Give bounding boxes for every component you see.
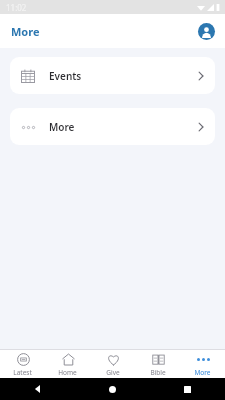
button[interactable]: More: [10, 108, 215, 145]
staticText: Bible: [150, 368, 166, 377]
staticText: Latest: [13, 368, 32, 377]
staticText: 11:02: [6, 2, 27, 13]
staticText: More: [49, 120, 75, 134]
button[interactable]: Home: [75, 378, 150, 400]
button[interactable]: Back: [0, 378, 75, 400]
button[interactable]: Events: [10, 57, 215, 94]
button[interactable]: More: [180, 350, 225, 378]
button[interactable]: Give: [90, 350, 135, 378]
staticText: More: [11, 24, 40, 39]
staticText: More: [194, 368, 211, 377]
staticText: Home: [58, 368, 77, 377]
button[interactable]: Profile: [195, 20, 217, 42]
staticText: Give: [106, 368, 120, 377]
button[interactable]: Home: [45, 350, 90, 378]
button[interactable]: Latest: [0, 350, 45, 378]
button[interactable]: Bible: [135, 350, 180, 378]
button[interactable]: Recent apps: [150, 378, 225, 400]
staticText: Events: [49, 69, 82, 83]
